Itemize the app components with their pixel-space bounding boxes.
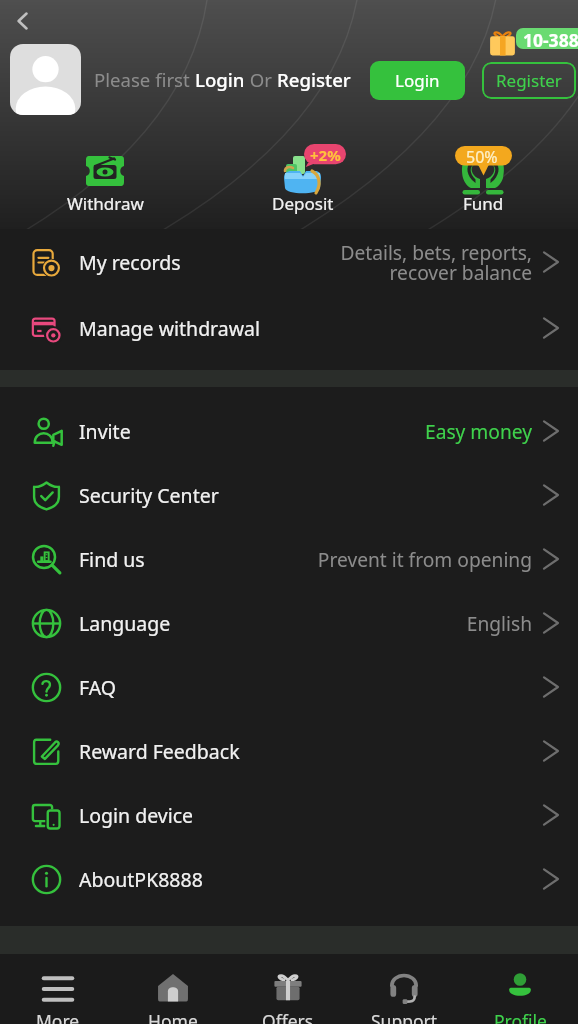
button[interactable]: More (0, 954, 115, 1024)
staticText: Support (371, 1009, 438, 1024)
button[interactable]: Home (115, 954, 230, 1024)
staticText: FAQ (79, 674, 117, 701)
button[interactable]: Login (370, 61, 465, 100)
button[interactable]: AboutPK8888 (0, 847, 578, 911)
staticText: English (466, 610, 532, 636)
staticText: Prevent it from opening (317, 546, 532, 572)
staticText: Language (79, 610, 171, 637)
button[interactable]: Invite (0, 399, 578, 463)
button[interactable]: Find us (0, 527, 578, 591)
staticText: Please first (94, 67, 195, 92)
button[interactable]: Login device (0, 783, 578, 847)
staticText: Reward Feedback (79, 738, 240, 765)
button[interactable]: Back (4, 2, 42, 40)
staticText: More (36, 1009, 80, 1024)
staticText: Login (395, 69, 440, 92)
button[interactable]: Withdraw (50, 140, 160, 224)
staticText: Register (277, 67, 351, 92)
staticText: Find us (79, 546, 145, 573)
staticText: Easy money (424, 418, 532, 444)
staticText: Login (195, 67, 245, 92)
button[interactable]: Manage withdrawal (0, 295, 578, 361)
staticText: 10-388 (523, 28, 578, 49)
staticText: Details, bets, reports, recover balance (340, 239, 532, 286)
button[interactable]: Fund (428, 140, 538, 224)
button[interactable]: Security Center (0, 463, 578, 527)
staticText: Manage withdrawal (79, 315, 261, 342)
button[interactable]: FAQ (0, 655, 578, 719)
button[interactable]: Language (0, 591, 578, 655)
staticText: My records (79, 249, 181, 276)
staticText: Home (148, 1009, 198, 1024)
staticText: 50% (466, 146, 498, 168)
staticText: Profile (494, 1009, 547, 1024)
staticText: Security Center (79, 482, 219, 509)
staticText: Register (496, 69, 562, 92)
button[interactable]: My records (0, 229, 578, 295)
staticText: Or (245, 67, 277, 92)
staticText: Offers (262, 1009, 314, 1024)
button[interactable]: Avatar (10, 44, 81, 115)
button[interactable]: Register (482, 62, 576, 99)
staticText: Invite (79, 418, 131, 445)
staticText: Fund (463, 192, 504, 215)
staticText: Deposit (272, 192, 334, 215)
staticText: Login device (79, 802, 194, 829)
staticText: +2% (310, 145, 341, 165)
button[interactable]: Offers (230, 954, 346, 1024)
staticText: AboutPK8888 (79, 866, 203, 893)
button[interactable]: Deposit (248, 140, 358, 224)
button[interactable]: Support (346, 954, 462, 1024)
button[interactable]: Profile (462, 954, 578, 1024)
staticText: Withdraw (67, 192, 144, 215)
button[interactable]: Reward Feedback (0, 719, 578, 783)
